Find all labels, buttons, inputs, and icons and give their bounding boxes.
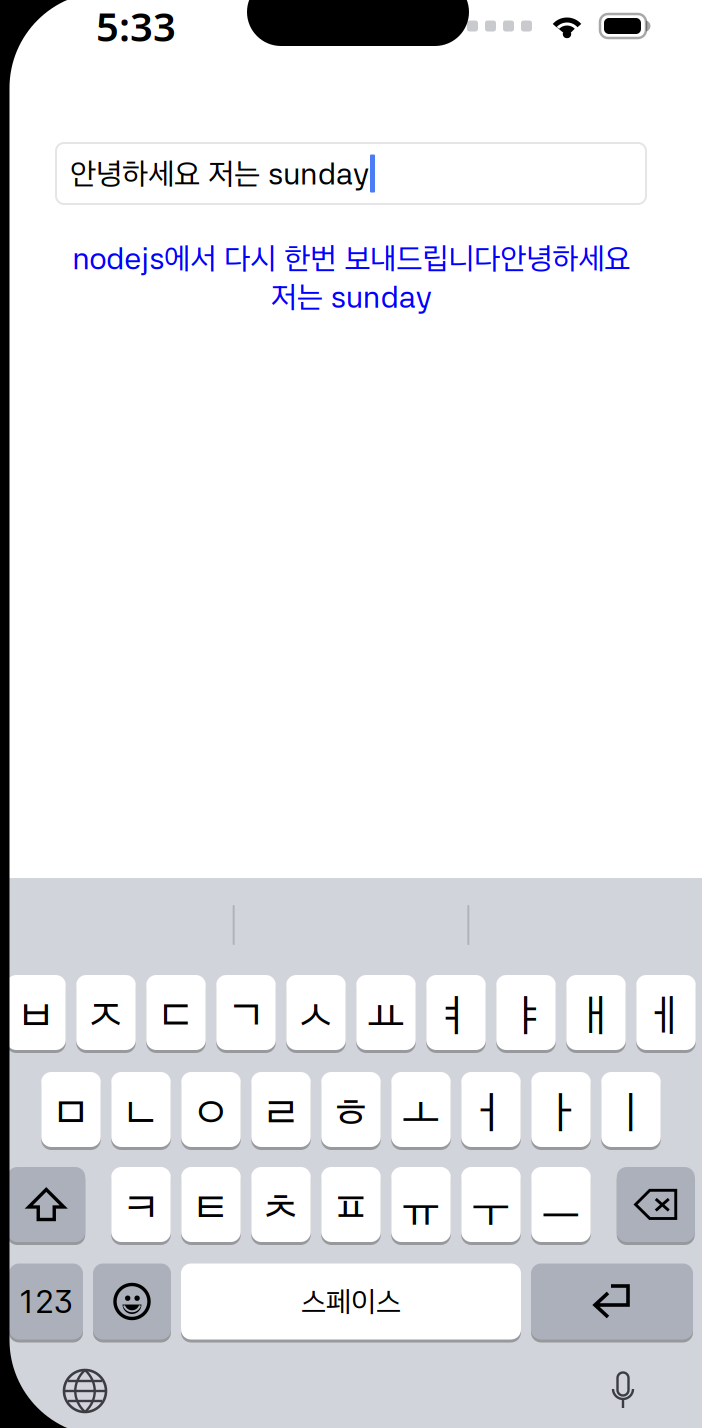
button[interactable]: ㅑ	[496, 975, 556, 1050]
staticText: ㅐ	[578, 988, 614, 1037]
button[interactable]: ㄱ	[216, 975, 276, 1050]
staticText: ㅈ	[88, 988, 124, 1037]
button[interactable]: ㅡ	[531, 1167, 591, 1242]
staticText: 5:33	[96, 0, 176, 52]
staticText: ㅊ	[263, 1180, 299, 1229]
button[interactable]: ㅍ	[321, 1167, 381, 1242]
button[interactable]	[93, 1263, 171, 1339]
button[interactable]: ㅌ	[181, 1167, 241, 1242]
button[interactable]: ㄹ	[251, 1072, 311, 1147]
button[interactable]: ㅁ	[41, 1072, 101, 1147]
button[interactable]: ㄷ	[146, 975, 206, 1050]
staticText: ㅕ	[438, 988, 474, 1037]
staticText: ㄹ	[263, 1085, 299, 1134]
button[interactable]: 123	[9, 1263, 83, 1339]
button[interactable]: ㅂ	[6, 975, 66, 1050]
button[interactable]: ㅓ	[461, 1072, 521, 1147]
button[interactable]: ㅛ	[356, 975, 416, 1050]
button[interactable]: ㅋ	[111, 1167, 171, 1242]
staticText: ㅇ	[193, 1085, 229, 1134]
staticText: ㅂ	[18, 988, 54, 1037]
staticText: ㅔ	[648, 988, 684, 1037]
button[interactable]: Dictate	[608, 1370, 638, 1412]
staticText: ㅑ	[508, 988, 544, 1037]
button[interactable]	[7, 1167, 85, 1242]
button[interactable]: ㅎ	[321, 1072, 381, 1147]
button[interactable]: 스페이스	[181, 1263, 521, 1339]
staticText: ㄴ	[123, 1085, 159, 1134]
staticText: ㄷ	[158, 988, 194, 1037]
button[interactable]: ㅏ	[531, 1072, 591, 1147]
button[interactable]	[617, 1167, 695, 1242]
staticText: ㅛ	[368, 988, 404, 1037]
button[interactable]: ㅅ	[286, 975, 346, 1050]
staticText: ㅋ	[123, 1180, 159, 1229]
staticText: 안녕하세요 저는 sunday	[70, 155, 369, 192]
staticText: ㅗ	[403, 1085, 439, 1134]
button[interactable]: ㅗ	[391, 1072, 451, 1147]
staticText: ㅎ	[333, 1085, 369, 1134]
button[interactable]	[531, 1263, 693, 1339]
button[interactable]: ㅜ	[461, 1167, 521, 1242]
button[interactable]: ㅕ	[426, 975, 486, 1050]
staticText: ㅠ	[403, 1180, 439, 1229]
staticText: ㅍ	[333, 1180, 369, 1229]
staticText: ㅁ	[53, 1085, 89, 1134]
button[interactable]: Next keyboard	[64, 1370, 106, 1412]
button[interactable]: 안녕하세요 저는 sunday	[56, 143, 646, 204]
button[interactable]: ㅠ	[391, 1167, 451, 1242]
button[interactable]: ㅐ	[566, 975, 626, 1050]
staticText: ㅏ	[543, 1085, 579, 1134]
staticText: ㅜ	[473, 1180, 509, 1229]
staticText: ㅅ	[298, 988, 334, 1037]
button[interactable]: ㅔ	[636, 975, 696, 1050]
staticText: ㅡ	[543, 1180, 579, 1229]
staticText: 스페이스	[301, 1284, 401, 1319]
staticText: ㅌ	[193, 1180, 229, 1229]
staticText: ㄱ	[228, 988, 264, 1037]
button[interactable]: ㄴ	[111, 1072, 171, 1147]
staticText: 저는 sunday	[270, 279, 431, 315]
button[interactable]: ㅣ	[601, 1072, 661, 1147]
button[interactable]: ㅇ	[181, 1072, 241, 1147]
staticText: ㅓ	[473, 1085, 509, 1134]
button[interactable]: ㅊ	[251, 1167, 311, 1242]
staticText: ㅣ	[613, 1085, 649, 1134]
staticText: 123	[19, 1282, 72, 1321]
button[interactable]: ㅈ	[76, 975, 136, 1050]
staticText: nodejs에서 다시 한번 보내드립니다안녕하세요	[72, 240, 630, 277]
